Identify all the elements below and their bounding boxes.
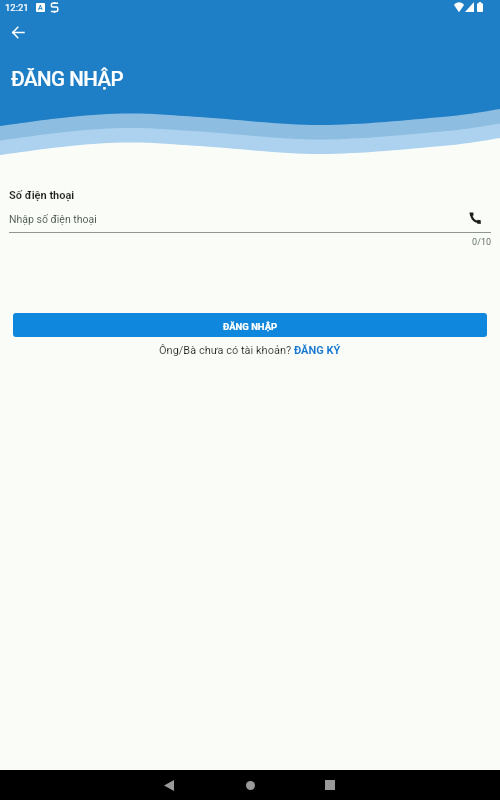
staticText: 0/10	[9, 237, 491, 248]
staticText: 12:21	[5, 2, 29, 13]
staticText: Nhập số điện thoại	[9, 213, 97, 225]
staticText: Số điện thoại	[9, 189, 75, 202]
button[interactable]: ĐĂNG NHẬP	[13, 313, 487, 337]
staticText: Ông/Bà chưa có tài khoản? ĐĂNG KÝ	[159, 344, 341, 357]
button[interactable]: Ông/Bà chưa có tài khoản? ĐĂNG KÝ	[159, 344, 341, 357]
staticText: ĐĂNG NHẬP	[223, 321, 278, 332]
button[interactable]: Back	[5, 20, 30, 45]
button[interactable]: Home	[230, 770, 270, 800]
button[interactable]: Back	[149, 770, 189, 800]
staticText: A	[38, 4, 43, 12]
staticText: ĐĂNG NHẬP	[11, 67, 124, 91]
button[interactable]: Recent apps	[310, 770, 350, 800]
